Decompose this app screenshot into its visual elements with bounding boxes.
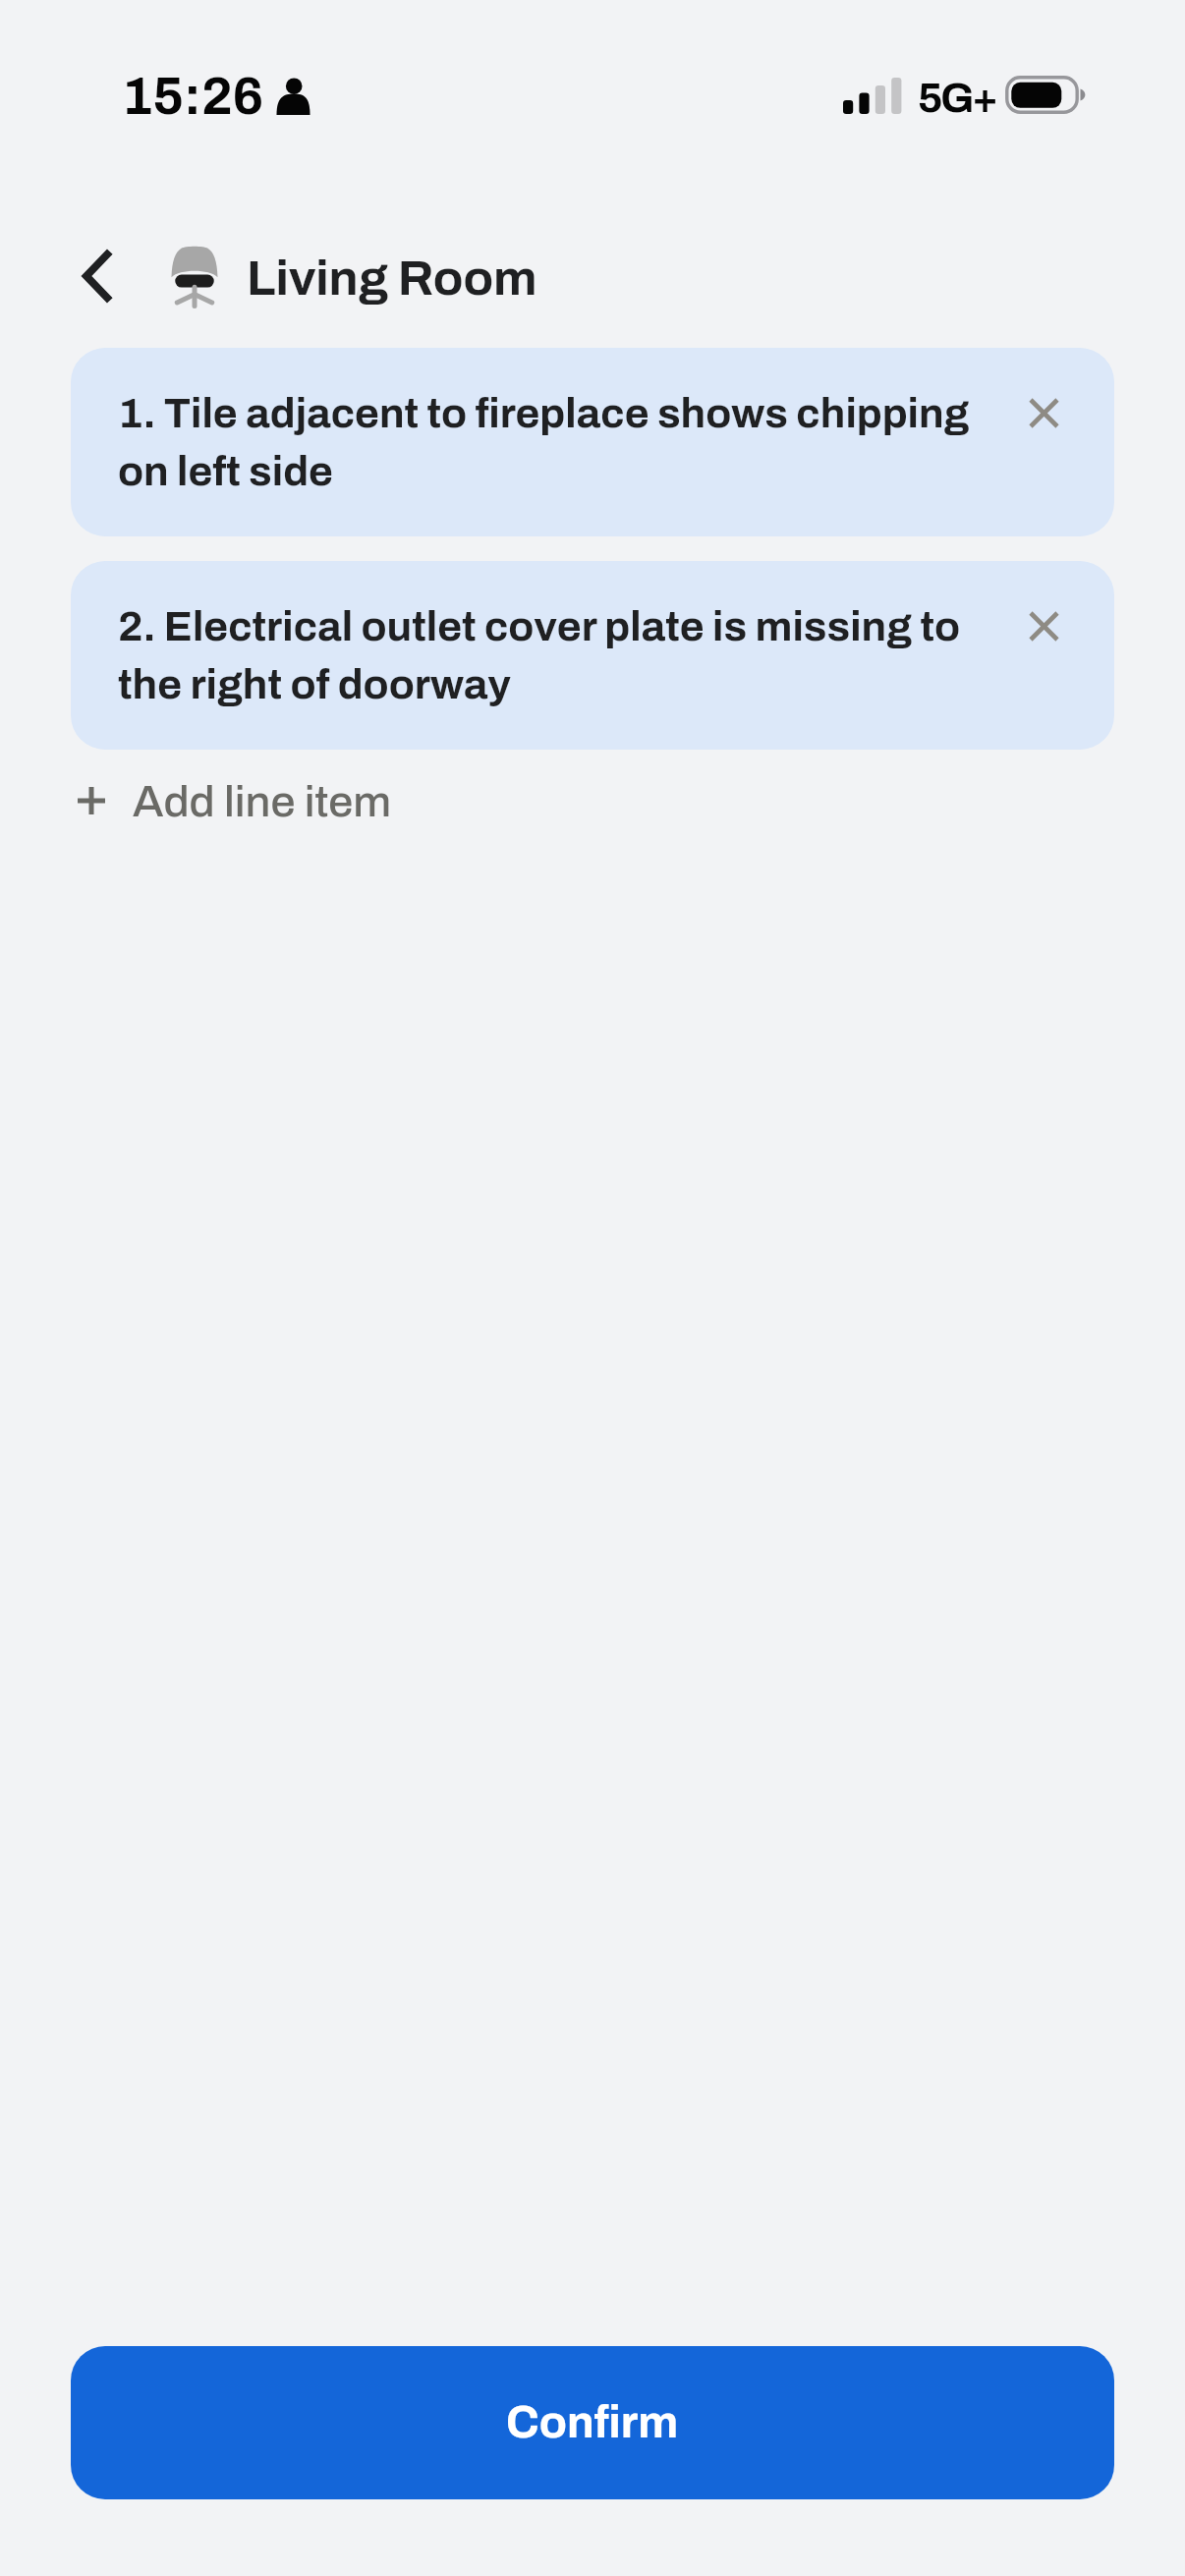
button[interactable]: Add line item [78,763,392,838]
staticText: 1. Tile adjacent to fireplace shows chip… [118,380,1007,496]
button[interactable]: 2. Electrical outlet cover plate is miss… [71,561,1114,750]
staticText: 2. Electrical outlet cover plate is miss… [118,593,1007,709]
button[interactable]: Back [66,241,127,311]
staticText: 15:26 [122,68,264,125]
staticText: 5G+ [918,75,996,121]
staticText: Living Room [247,252,537,305]
button[interactable]: 1. Tile adjacent to fireplace shows chip… [71,348,1114,536]
button[interactable]: Remove item [1002,371,1085,454]
button[interactable]: Confirm [71,2346,1114,2499]
staticText: Add line item [133,777,392,825]
staticText: Confirm [506,2398,679,2447]
button[interactable]: Remove item [1002,585,1085,667]
